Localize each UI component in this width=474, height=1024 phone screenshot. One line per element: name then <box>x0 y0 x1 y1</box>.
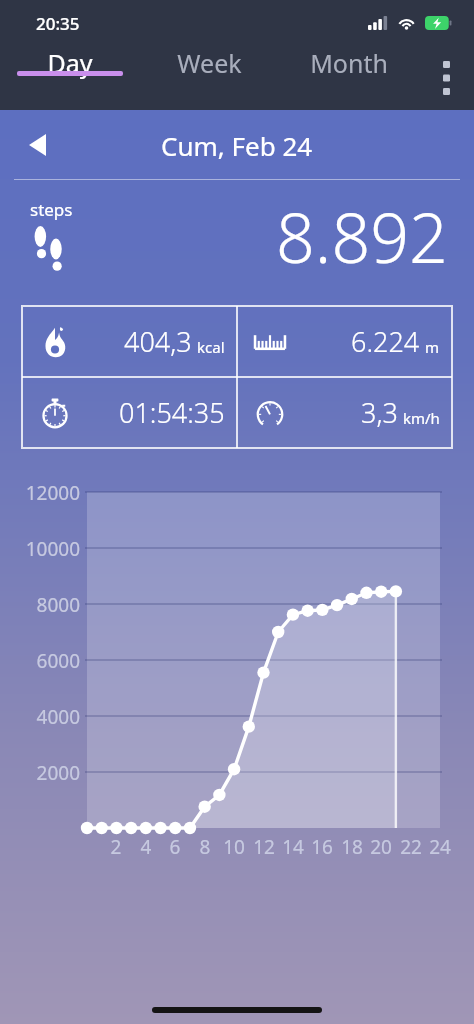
staticText: 20:35 <box>36 12 80 35</box>
staticText: km/h <box>403 408 440 428</box>
staticText: Cum, Feb 24 <box>161 128 313 163</box>
staticText: steps <box>30 198 73 221</box>
staticText: 12000 <box>18 480 80 506</box>
staticText: 10 <box>220 834 248 860</box>
staticText: 6 <box>161 834 189 860</box>
button[interactable]: More options <box>418 46 474 110</box>
button[interactable]: Week <box>140 46 279 80</box>
staticText: 8.892 <box>276 190 448 283</box>
staticText: 4000 <box>18 704 80 730</box>
staticText: 8000 <box>18 592 80 618</box>
button[interactable]: Previous day <box>14 122 60 168</box>
staticText: Day <box>47 46 93 80</box>
staticText: 18 <box>338 834 366 860</box>
staticText: 6.224 <box>351 323 420 360</box>
staticText: 6000 <box>18 648 80 674</box>
button[interactable]: 3,3 <box>237 377 452 448</box>
staticText: Week <box>177 46 242 80</box>
staticText: 2 <box>102 834 130 860</box>
staticText: Month <box>310 46 388 80</box>
button[interactable]: 6.224 <box>237 306 452 377</box>
staticText: 16 <box>308 834 336 860</box>
staticText: 2000 <box>18 760 80 786</box>
staticText: 14 <box>279 834 307 860</box>
staticText: 10000 <box>18 536 80 562</box>
button[interactable]: Day <box>0 46 140 80</box>
staticText: 12 <box>250 834 278 860</box>
staticText: 3,3 <box>361 394 398 431</box>
staticText: 20 <box>367 834 395 860</box>
staticText: m <box>425 337 440 357</box>
button[interactable]: 01:54:35 <box>22 377 237 448</box>
staticText: 22 <box>397 834 425 860</box>
staticText: 24 <box>426 834 454 860</box>
button[interactable]: 404,3 <box>22 306 237 377</box>
staticText: 8 <box>191 834 219 860</box>
button[interactable]: Month <box>279 46 418 80</box>
staticText: 4 <box>132 834 160 860</box>
staticText: kcal <box>197 337 225 357</box>
staticText: 01:54:35 <box>119 394 225 431</box>
staticText: 404,3 <box>124 323 192 360</box>
